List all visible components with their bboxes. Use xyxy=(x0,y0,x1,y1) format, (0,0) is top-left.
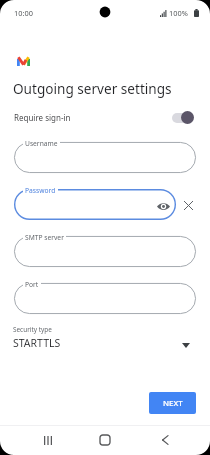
button[interactable]: Port xyxy=(14,277,196,314)
staticText: 100% xyxy=(169,8,188,18)
button[interactable]: Username xyxy=(14,136,196,173)
button[interactable]: Require sign-in xyxy=(0,107,210,127)
staticText: Outgoing server settings xyxy=(13,79,172,98)
button[interactable]: Require sign-in xyxy=(172,111,194,124)
staticText: 10:00 xyxy=(14,8,33,18)
button[interactable]: SMTP server xyxy=(14,230,196,267)
staticText: Password xyxy=(25,186,56,195)
button[interactable]: Recents xyxy=(28,425,68,455)
staticText: Username xyxy=(25,139,58,148)
button[interactable]: Show password xyxy=(154,197,172,215)
button[interactable]: Back xyxy=(145,425,185,455)
staticText: Require sign-in xyxy=(14,112,71,123)
button[interactable]: Clear password xyxy=(179,196,198,215)
button[interactable]: Home xyxy=(85,425,125,455)
staticText: STARTTLS xyxy=(13,336,61,350)
button[interactable]: Password xyxy=(14,183,176,220)
button[interactable]: NEXT xyxy=(149,392,196,414)
button[interactable]: Security type xyxy=(0,325,210,357)
staticText: SMTP server xyxy=(25,233,64,242)
staticText: NEXT xyxy=(163,398,183,409)
staticText: Port xyxy=(25,280,39,289)
staticText: Security type xyxy=(13,325,52,334)
